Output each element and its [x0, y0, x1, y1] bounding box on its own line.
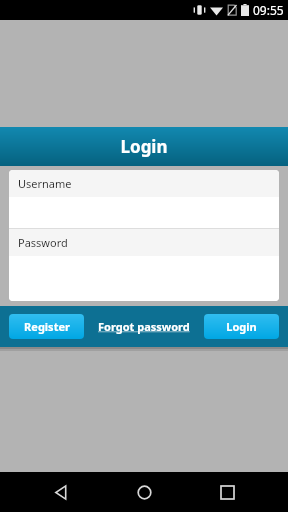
button[interactable]: Back — [39, 472, 83, 512]
button[interactable]: Login — [204, 314, 279, 339]
staticText: Login — [226, 319, 257, 334]
staticText: Password — [18, 235, 68, 250]
staticText: Register — [24, 319, 70, 334]
staticText: Username — [18, 176, 72, 191]
staticText: Forgot password — [98, 319, 190, 334]
button[interactable]: Home — [122, 472, 166, 512]
button[interactable]: Register — [9, 314, 84, 339]
staticText: 09:55 — [253, 2, 284, 18]
button[interactable]: Recent apps — [205, 472, 249, 512]
staticText: Login — [120, 135, 168, 158]
button[interactable]: Forgot password — [92, 313, 196, 340]
